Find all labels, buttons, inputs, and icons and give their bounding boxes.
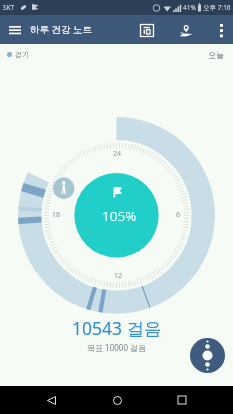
staticText: 41% xyxy=(183,3,196,12)
button[interactable]: 오늘 xyxy=(208,50,224,60)
button[interactable]: More actions xyxy=(190,338,225,373)
button[interactable]: 걷기 xyxy=(7,50,29,59)
staticText: 24 xyxy=(113,149,122,159)
staticText: 목표 10000 걸음 xyxy=(87,342,147,353)
staticText: 6 xyxy=(176,210,181,220)
staticText: 12 xyxy=(114,271,123,281)
staticText: 걷기 xyxy=(15,50,29,59)
staticText: 18 xyxy=(52,210,61,220)
button[interactable]: Home xyxy=(103,386,131,414)
button[interactable]: More options xyxy=(211,20,231,40)
button[interactable]: Recent apps xyxy=(168,386,196,414)
staticText: 105% xyxy=(102,207,137,225)
button[interactable]: ID card xyxy=(135,18,159,42)
button[interactable]: Location xyxy=(174,18,198,42)
staticText: 10543 걸음 xyxy=(72,316,162,340)
staticText: 오후 7:16 xyxy=(203,3,231,12)
button[interactable]: Menu xyxy=(0,15,29,44)
staticText: 하루 건강 노트 xyxy=(30,23,92,36)
button[interactable]: Back xyxy=(37,386,65,414)
staticText: SKT xyxy=(3,3,15,12)
